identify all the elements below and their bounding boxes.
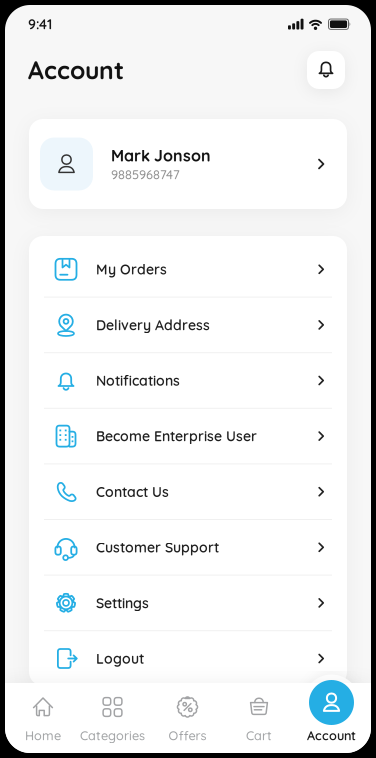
button[interactable]: Categories	[76, 683, 148, 753]
button[interactable]: Notifications	[29, 353, 347, 408]
staticText: Delivery Address	[96, 316, 210, 334]
button[interactable]: Cart	[223, 683, 295, 753]
staticText: Become Enterprise User	[96, 427, 257, 445]
button[interactable]: Customer Support	[29, 520, 347, 575]
staticText: Contact Us	[96, 483, 169, 500]
staticText: 9885968747	[111, 167, 180, 182]
staticText: Home	[25, 728, 61, 743]
button[interactable]: Home	[7, 683, 79, 753]
button[interactable]: Delivery Address	[29, 298, 347, 352]
button[interactable]: My Orders	[29, 242, 347, 297]
button[interactable]: Notifications	[307, 51, 345, 89]
staticText: Settings	[96, 594, 149, 612]
staticText: Offers	[168, 728, 206, 743]
staticText: Notifications	[96, 372, 180, 389]
button[interactable]: Mark Jonson	[29, 119, 347, 209]
button[interactable]: Logout	[29, 631, 347, 686]
staticText: 9:41	[28, 15, 52, 33]
staticText: Customer Support	[96, 538, 219, 556]
staticText: Account	[307, 728, 356, 743]
button[interactable]: Contact Us	[29, 464, 347, 519]
staticText: Logout	[96, 650, 144, 667]
staticText: Cart	[246, 728, 272, 743]
staticText: Categories	[80, 728, 145, 743]
button[interactable]: Settings	[29, 576, 347, 630]
staticText: Mark Jonson	[111, 146, 211, 166]
button[interactable]: Become Enterprise User	[29, 409, 347, 463]
button[interactable]: Account	[295, 683, 367, 753]
staticText: My Orders	[96, 261, 167, 278]
button[interactable]: Offers	[151, 683, 223, 753]
staticText: Account	[28, 55, 124, 85]
